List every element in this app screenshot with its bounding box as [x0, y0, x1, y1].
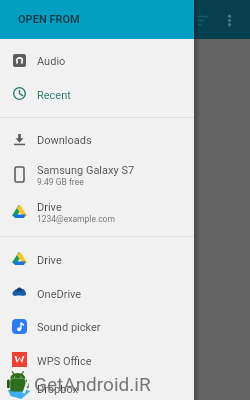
staticText: Dropbox [37, 383, 79, 396]
staticText: OneDrive [37, 288, 82, 301]
button[interactable]: Drive [0, 194, 194, 231]
button[interactable]: Recent [0, 78, 194, 112]
staticText: 9.49 GB free [37, 177, 84, 187]
staticText: Audio [37, 55, 66, 68]
staticText: Downloads [37, 134, 92, 147]
button[interactable]: More options [216, 7, 242, 33]
button[interactable]: Downloads [0, 124, 194, 157]
staticText: OPEN FROM [18, 13, 80, 26]
staticText: GetAndroid.iR [34, 373, 151, 395]
staticText: Drive [37, 201, 62, 214]
button[interactable]: Samsung Galaxy S7 [0, 157, 194, 194]
button[interactable]: WPS Office [0, 344, 194, 378]
staticText: 1234@example.com [37, 214, 115, 224]
staticText: Sound picker [37, 321, 101, 334]
button[interactable]: Sort [190, 7, 216, 33]
staticText: Recent [37, 89, 71, 102]
staticText: WPS Office [37, 355, 92, 368]
button[interactable]: OneDrive [0, 277, 194, 311]
button[interactable]: Audio [0, 45, 194, 78]
staticText: Samsung Galaxy S7 [37, 164, 135, 177]
button[interactable]: Dropbox [0, 378, 194, 400]
button[interactable]: Sound picker [0, 311, 194, 344]
button[interactable]: Drive [0, 243, 194, 277]
staticText: Drive [37, 254, 62, 267]
